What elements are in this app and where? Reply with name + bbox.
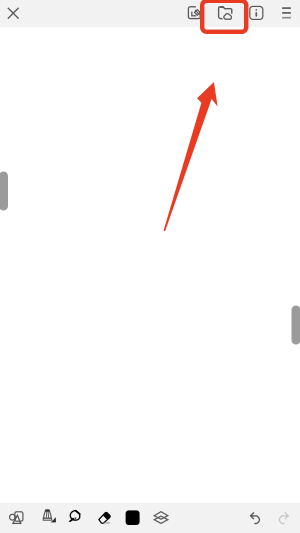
button[interactable]: Open from cloud bbox=[211, 0, 239, 26]
button[interactable]: Lasso select bbox=[60, 501, 89, 531]
button[interactable]: Redo bbox=[268, 503, 297, 533]
button[interactable]: Brush bbox=[34, 501, 63, 531]
button[interactable]: Info bbox=[242, 0, 270, 26]
button[interactable]: Menu bbox=[272, 0, 300, 26]
button[interactable]: Shapes bbox=[2, 501, 31, 531]
button[interactable]: Save disabled bbox=[180, 0, 208, 26]
button[interactable]: Layers bbox=[146, 501, 175, 531]
button[interactable]: Close bbox=[0, 0, 27, 27]
button[interactable]: Eraser bbox=[90, 502, 119, 532]
button[interactable]: Colour bbox=[118, 503, 147, 533]
button[interactable]: Undo bbox=[241, 503, 270, 533]
